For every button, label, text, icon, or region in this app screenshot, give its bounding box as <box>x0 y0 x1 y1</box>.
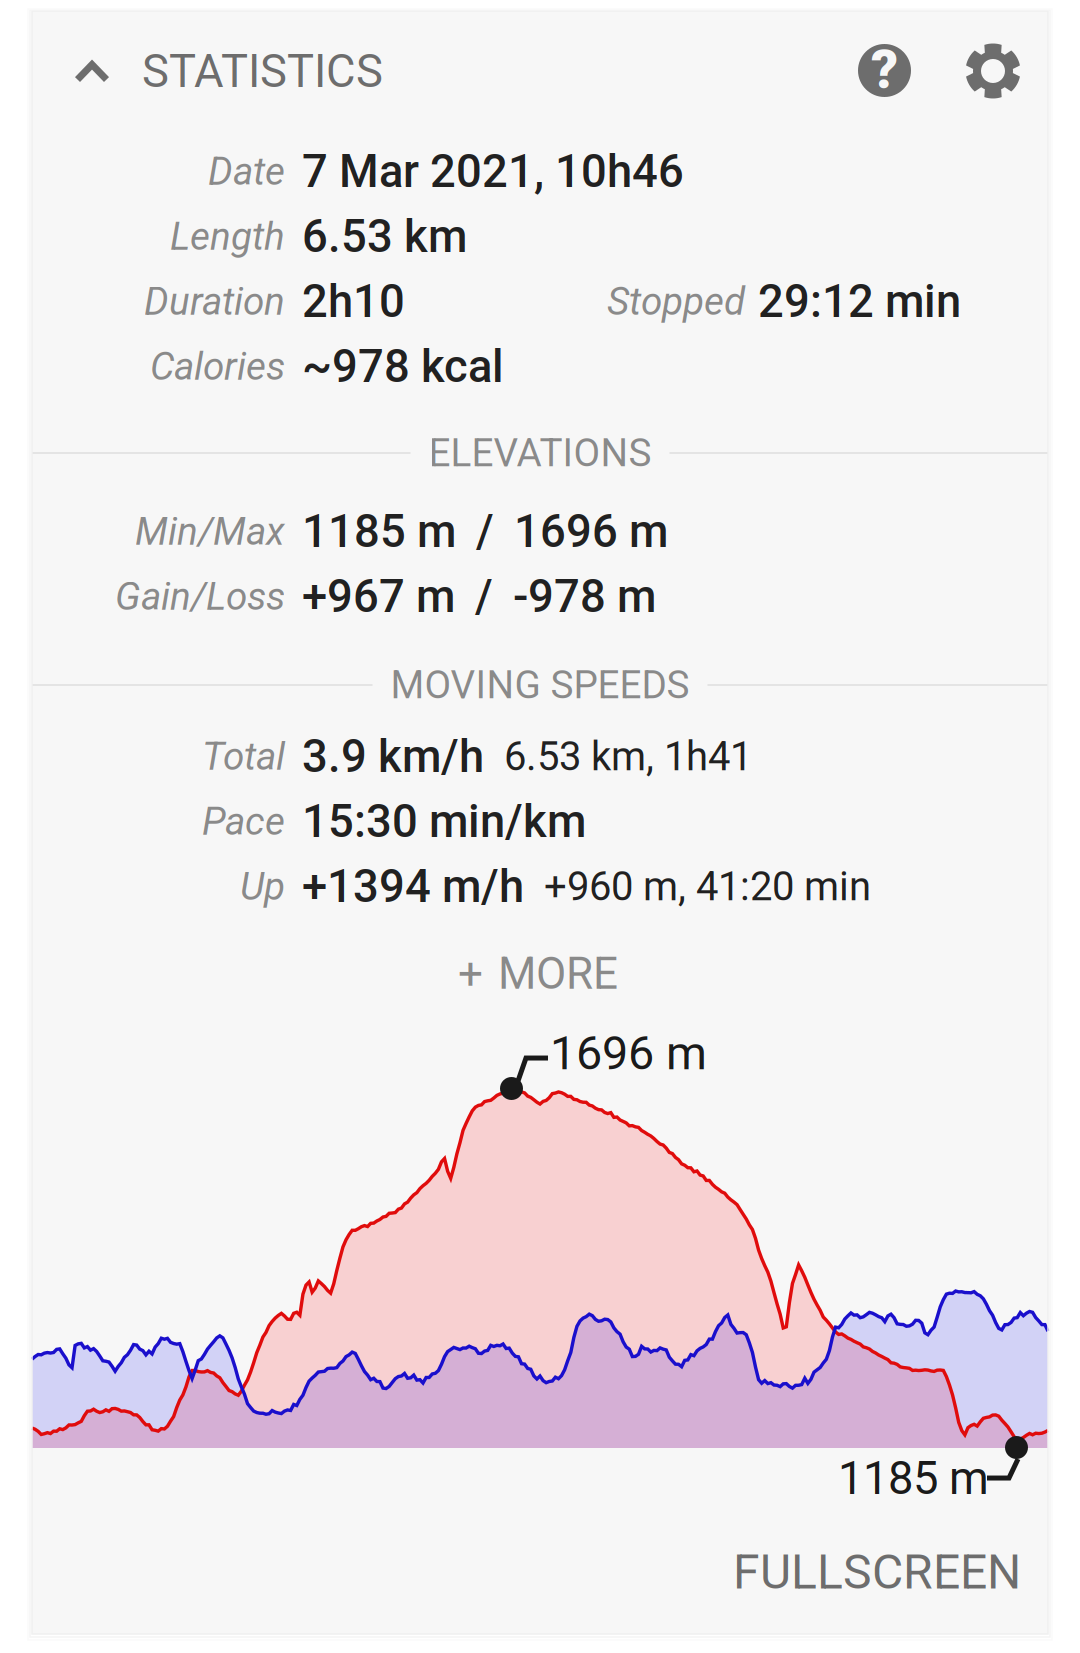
button[interactable]: STATISTICS <box>34 23 423 120</box>
staticText: +1394 m/h <box>302 860 524 913</box>
staticText: 6.53 km <box>302 210 467 263</box>
staticText: Length <box>170 214 285 259</box>
staticText: 7 Mar 2021, 10h46 <box>302 145 684 198</box>
staticText: +960 m, 41:20 min <box>544 863 871 910</box>
staticText: STATISTICS <box>142 45 383 98</box>
button[interactable]: Settings <box>951 29 1035 113</box>
staticText: Calories <box>150 344 285 389</box>
button[interactable]: + <box>428 930 648 1018</box>
staticText: ? <box>871 38 898 101</box>
staticText: ELEVATIONS <box>428 430 651 476</box>
button[interactable]: FULLSCREEN <box>703 1524 1051 1620</box>
staticText: 29:12 min <box>758 275 961 328</box>
staticText: 2h10 <box>302 275 405 328</box>
staticText: Total <box>202 734 285 779</box>
staticText: MORE <box>498 948 618 1000</box>
staticText: Up <box>240 864 285 909</box>
staticText: 15:30 min/km <box>302 795 586 848</box>
staticText: + <box>458 948 483 1000</box>
staticText: Date <box>208 149 285 194</box>
staticText: Pace <box>202 799 285 844</box>
staticText: 1185 m / 1696 m <box>302 505 668 558</box>
staticText: Min/Max <box>135 509 285 554</box>
staticText: Gain/Loss <box>115 574 285 619</box>
staticText: FULLSCREEN <box>733 1544 1021 1600</box>
button[interactable]: Help <box>842 28 927 113</box>
staticText: Duration <box>144 279 285 324</box>
staticText: 1185 m <box>838 1452 989 1505</box>
staticText: Stopped <box>607 279 745 324</box>
staticText: 1696 m <box>550 1026 707 1081</box>
staticText: 3.9 km/h <box>302 730 484 783</box>
staticText: MOVING SPEEDS <box>390 662 689 708</box>
staticText: 6.53 km, 1h41 <box>504 733 752 780</box>
staticText: ~978 kcal <box>302 340 504 393</box>
staticText: +967 m / -978 m <box>302 570 656 623</box>
